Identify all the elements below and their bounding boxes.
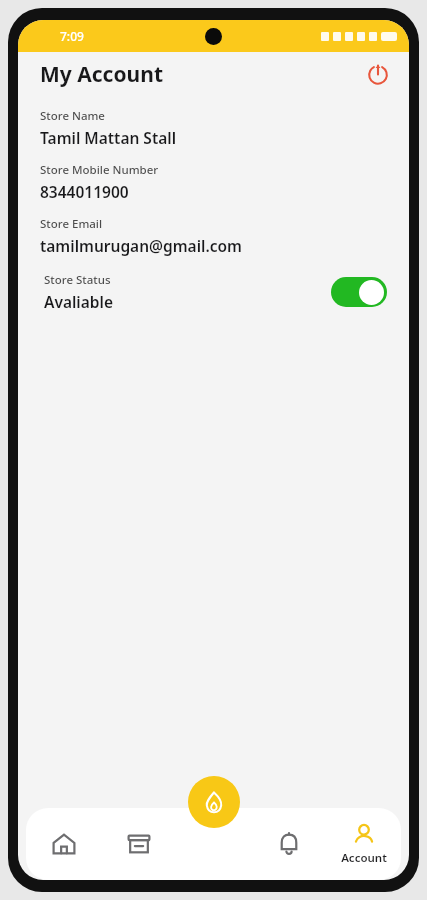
staticText: 7:09 xyxy=(60,28,84,44)
staticText: Store Mobile Number xyxy=(40,162,159,178)
staticText: My Account xyxy=(40,60,163,89)
button[interactable]: Add xyxy=(188,776,240,828)
staticText: Avaliable xyxy=(44,291,113,312)
staticText: Store Email xyxy=(40,216,103,232)
staticText: 8344011900 xyxy=(40,181,129,202)
staticText: tamilmurugan@gmail.com xyxy=(40,235,242,256)
button[interactable]: Home xyxy=(26,808,101,880)
button[interactable]: Notifications xyxy=(251,808,326,880)
button[interactable]: Store status toggle xyxy=(331,277,387,307)
button[interactable]: Account xyxy=(326,808,401,880)
button[interactable]: Refresh xyxy=(361,57,395,91)
staticText: Account xyxy=(341,850,387,866)
staticText: Tamil Mattan Stall xyxy=(40,127,177,148)
staticText: Store Status xyxy=(44,272,111,288)
button[interactable]: Orders xyxy=(101,808,176,880)
staticText: Store Name xyxy=(40,108,105,124)
